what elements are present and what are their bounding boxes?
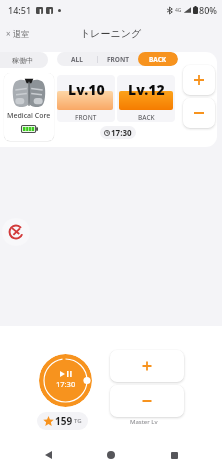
staticText: ×: [6, 28, 11, 39]
staticText: Lv.12: [128, 80, 165, 99]
button[interactable]: ×: [0, 24, 35, 43]
button[interactable]: FRONT: [98, 52, 138, 66]
staticText: Lv.10: [68, 80, 105, 99]
button[interactable]: Back: [33, 440, 63, 470]
button[interactable]: Increase level: [183, 65, 215, 95]
staticText: 退室: [13, 29, 29, 39]
staticText: 稼働中: [12, 56, 33, 65]
staticText: 17:30: [56, 379, 76, 389]
staticText: 159: [55, 414, 73, 428]
staticText: 4G: [175, 7, 182, 14]
staticText: 14:51: [8, 4, 32, 16]
button[interactable]: Decrease level: [183, 98, 215, 128]
button[interactable]: ALL: [57, 52, 97, 66]
staticText: 80%: [199, 4, 217, 16]
staticText: BACK: [138, 113, 155, 122]
button[interactable]: Decrease master level: [110, 385, 184, 417]
staticText: TG: [74, 417, 82, 425]
button[interactable]: Sync: [2, 218, 30, 246]
button[interactable]: Medical Core: [4, 73, 54, 141]
button[interactable]: Lv.10: [57, 75, 115, 122]
button[interactable]: 稼働中: [0, 52, 48, 68]
staticText: トレーニング: [80, 27, 142, 40]
button[interactable]: Home: [96, 440, 126, 470]
button[interactable]: Lv.12: [117, 75, 175, 122]
staticText: ALL: [71, 55, 83, 64]
staticText: 17:30: [111, 127, 132, 138]
staticText: Medical Core: [7, 111, 51, 121]
staticText: FRONT: [107, 55, 130, 64]
button[interactable]: BACK: [138, 52, 178, 66]
staticText: BACK: [149, 55, 167, 64]
button[interactable]: Recent apps: [159, 440, 189, 470]
button[interactable]: Increase master level: [110, 350, 184, 382]
button[interactable]: 159: [37, 412, 88, 430]
staticText: Master Lv: [130, 418, 158, 426]
button[interactable]: 17:30: [39, 354, 92, 407]
staticText: FRONT: [75, 113, 97, 122]
